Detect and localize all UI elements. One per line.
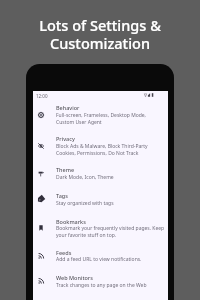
staticText: Track changes to any page on the Web: [56, 282, 147, 289]
button[interactable]: Bookmarks settings: [33, 213, 168, 243]
staticText: Bookmarks: [56, 218, 86, 225]
button[interactable]: Privacy settings: [33, 130, 168, 160]
staticText: Behavior: [56, 104, 80, 111]
button[interactable]: Tags settings: [33, 187, 168, 210]
staticText: Web Monitors: [56, 274, 93, 281]
staticText: Feeds: [56, 249, 72, 256]
staticText: Theme: [56, 166, 75, 173]
staticText: 12:00: [36, 93, 48, 99]
button[interactable]: Theme settings: [33, 161, 168, 184]
staticText: Bookmark your frequently visited pages. …: [56, 225, 165, 232]
staticText: your favorite stuff on top.: [56, 232, 117, 239]
button[interactable]: Web Monitors settings: [33, 269, 168, 292]
staticText: Full-screen, Frameless, Desktop Mode,: [56, 112, 146, 119]
staticText: Stay organized with tags: [56, 200, 114, 207]
staticText: Customization: [0, 33, 200, 53]
staticText: Add a feed URL to view notifications.: [56, 256, 142, 263]
button[interactable]: Behavior settings: [33, 99, 168, 129]
staticText: Privacy: [56, 135, 75, 142]
staticText: Cookies, Permissions, Do Not Track: [56, 150, 139, 157]
staticText: Lots of Settings &: [0, 15, 200, 35]
other: Status icons: [144, 93, 157, 97]
staticText: Block Ads & Malware, Block Third-Party: [56, 143, 148, 150]
staticText: Custom User Agent: [56, 119, 102, 126]
button[interactable]: Feeds settings: [33, 244, 168, 267]
staticText: Dark Mode, Icon, Theme: [56, 174, 114, 181]
staticText: Tags: [56, 192, 68, 199]
